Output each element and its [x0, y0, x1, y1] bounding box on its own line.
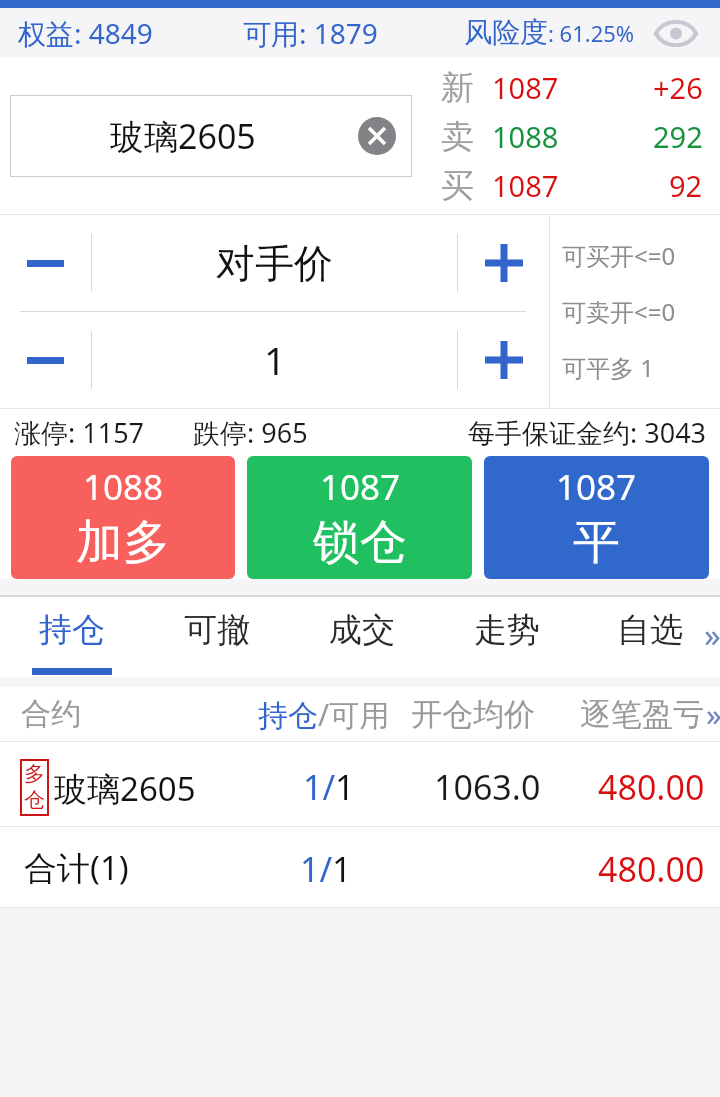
- staticText: 玻璃2605: [110, 113, 256, 159]
- staticText: 买: [441, 165, 474, 207]
- staticText: 合约: [21, 695, 81, 733]
- button[interactable]: Decrease: [0, 312, 91, 408]
- staticText: 涨停: 1157: [14, 414, 145, 451]
- staticText: 每手保证金约: 3043: [468, 414, 707, 451]
- staticText: 持仓/可用: [258, 694, 390, 735]
- staticText: 1088: [83, 463, 164, 511]
- staticText: 92: [669, 166, 703, 205]
- staticText: 合计(1): [24, 845, 129, 890]
- staticText: 480.00: [598, 764, 705, 810]
- button[interactable]: Decrease: [0, 215, 91, 311]
- button[interactable]: 持仓: [0, 597, 144, 677]
- staticText: 玻璃2605: [54, 766, 196, 811]
- staticText: 1087: [492, 166, 559, 205]
- staticText: 可用: 1879: [243, 14, 378, 52]
- button[interactable]: Increase: [458, 215, 549, 311]
- button[interactable]: 1088: [11, 456, 235, 579]
- button[interactable]: 1087: [247, 456, 472, 579]
- staticText: 权益: 4849: [18, 14, 153, 52]
- staticText: 1/1: [303, 764, 355, 810]
- staticText: 对手价: [216, 239, 333, 288]
- button[interactable]: 多 仓: [0, 742, 720, 826]
- button[interactable]: 玻璃2605: [10, 95, 412, 177]
- button[interactable]: 1087: [484, 456, 709, 579]
- button[interactable]: Toggle balance visibility: [654, 11, 698, 55]
- button[interactable]: More tabs: [694, 597, 720, 677]
- staticText: 1063.0: [434, 764, 541, 810]
- staticText: 480.00: [598, 846, 705, 892]
- button[interactable]: 走势: [434, 597, 579, 677]
- staticText: 跌停: 965: [193, 414, 308, 451]
- staticText: 可卖开<=0: [562, 295, 676, 328]
- staticText: 加多: [76, 513, 170, 572]
- staticText: 新: [441, 67, 474, 109]
- staticText: 1087: [320, 463, 401, 511]
- staticText: 可买开<=0: [562, 239, 676, 272]
- staticText: 持仓: [39, 609, 105, 651]
- staticText: 1087: [492, 68, 559, 107]
- staticText: 多 仓: [24, 761, 45, 814]
- button[interactable]: 自选: [579, 597, 720, 677]
- staticText: 1088: [492, 117, 559, 156]
- staticText: 可撤: [184, 609, 250, 651]
- staticText: +26: [653, 68, 703, 107]
- staticText: 1087: [556, 463, 637, 511]
- staticText: 锁仓: [313, 513, 407, 572]
- button[interactable]: Clear contract: [358, 117, 396, 155]
- staticText: 1/1: [300, 846, 352, 892]
- staticText: 风险度: 61.25%: [464, 15, 635, 50]
- staticText: »: [706, 693, 720, 735]
- staticText: 平: [573, 513, 620, 572]
- staticText: 逐笔盈亏: [580, 695, 704, 734]
- staticText: »: [704, 612, 720, 657]
- staticText: 卖: [441, 116, 474, 158]
- button[interactable]: 可撤: [144, 597, 289, 677]
- staticText: 自选: [617, 609, 683, 651]
- staticText: 1: [264, 334, 286, 386]
- staticText: 292: [653, 117, 703, 156]
- staticText: 成交: [329, 609, 395, 651]
- staticText: 可平多 1: [562, 351, 654, 384]
- button[interactable]: 成交: [289, 597, 434, 677]
- staticText: 开仓均价: [411, 695, 535, 734]
- staticText: 走势: [474, 609, 540, 651]
- button[interactable]: Increase: [458, 312, 549, 408]
